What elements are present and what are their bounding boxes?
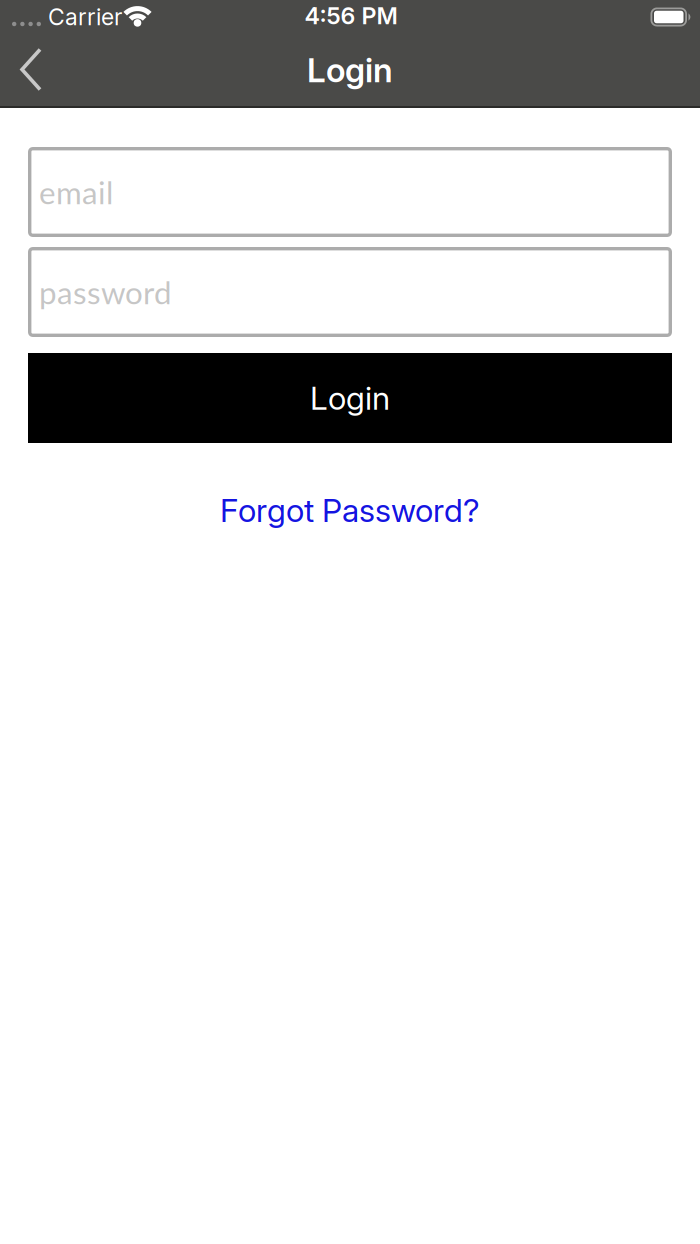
staticText: 4:56 PM xyxy=(304,2,397,30)
staticText: Login xyxy=(307,50,393,90)
button[interactable]: password xyxy=(28,247,672,337)
button[interactable] xyxy=(0,53,40,93)
button[interactable]: Login xyxy=(28,353,672,443)
staticText: Forgot Password? xyxy=(220,491,480,530)
button[interactable]: Forgot Password? xyxy=(220,491,480,530)
staticText: Carrier xyxy=(48,3,122,31)
staticText: Login xyxy=(310,379,390,417)
staticText: password xyxy=(39,273,172,311)
staticText: email xyxy=(39,173,113,211)
button[interactable]: email xyxy=(28,147,672,237)
